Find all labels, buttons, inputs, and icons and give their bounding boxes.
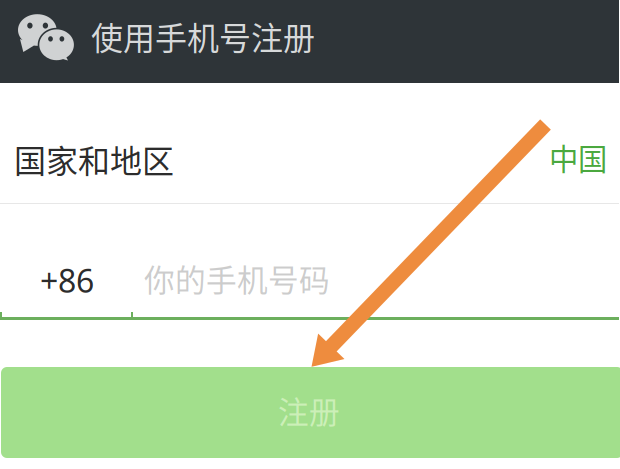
staticText: 使用手机号注册 — [91, 13, 315, 59]
button[interactable]: 注册 — [1, 367, 620, 458]
staticText: +86 — [40, 259, 94, 301]
button[interactable]: +86 — [0, 204, 133, 317]
button[interactable]: 国家和地区 — [0, 83, 619, 204]
button[interactable]: 你的手机号码 — [133, 204, 619, 317]
staticText: 国家和地区 — [14, 136, 174, 182]
staticText: 注册 — [278, 388, 340, 432]
staticText: 你的手机号码 — [144, 256, 330, 300]
staticText: 中国 — [549, 136, 607, 178]
